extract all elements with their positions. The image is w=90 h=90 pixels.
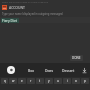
staticText: Dessert xyxy=(62,68,75,73)
staticText: Select the account name or create a new … xyxy=(2,1,49,4)
staticText: Does xyxy=(45,68,54,73)
button[interactable]: Fiery Diet xyxy=(0,17,90,23)
staticText: p xyxy=(84,79,86,83)
button[interactable]: Dessert xyxy=(59,63,78,77)
button[interactable]: i xyxy=(63,78,71,84)
button[interactable]: More suggestions xyxy=(78,63,90,77)
button[interactable]: e xyxy=(18,78,26,84)
button[interactable]: ACCOUNT xyxy=(0,4,90,11)
button[interactable]: y xyxy=(45,78,53,84)
staticText: Fiery Diet xyxy=(2,18,18,23)
button[interactable]: Does xyxy=(40,63,59,77)
staticText: Type your name (displayed in outgoing me… xyxy=(2,12,64,16)
staticText: DONE xyxy=(72,56,81,60)
staticText: u xyxy=(57,79,59,83)
button[interactable]: Voice input xyxy=(0,63,22,77)
button[interactable]: o xyxy=(72,78,80,84)
button[interactable]: t xyxy=(36,78,44,84)
staticText: y xyxy=(48,79,50,83)
button[interactable]: u xyxy=(54,78,62,84)
staticText: i xyxy=(67,79,68,83)
button[interactable]: w xyxy=(9,78,17,84)
staticText: ACCOUNT xyxy=(9,5,26,10)
staticText: q xyxy=(4,79,6,83)
staticText: r xyxy=(30,79,32,83)
staticText: o xyxy=(75,79,77,83)
button[interactable]: DONE xyxy=(70,55,83,61)
button[interactable]: Box xyxy=(22,63,40,77)
button[interactable]: r xyxy=(27,78,35,84)
button[interactable]: q xyxy=(1,78,8,84)
staticText: Box xyxy=(28,68,34,73)
staticText: t xyxy=(39,79,41,83)
button[interactable]: p xyxy=(81,78,89,84)
button[interactable]: Type your name (displayed in outgoing me… xyxy=(0,11,90,17)
staticText: e xyxy=(21,79,23,83)
staticText: w xyxy=(12,79,15,83)
